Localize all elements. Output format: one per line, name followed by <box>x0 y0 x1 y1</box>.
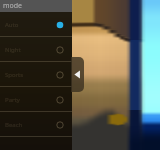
button[interactable]: Close mode drawer <box>71 57 84 92</box>
button[interactable]: Beach <box>0 112 72 137</box>
button[interactable]: Auto <box>0 12 72 37</box>
staticText: Party <box>5 96 56 104</box>
button[interactable]: Night <box>0 37 72 62</box>
staticText: Auto <box>5 21 56 29</box>
button[interactable]: mode <box>0 0 72 12</box>
staticText: Night <box>5 46 56 54</box>
staticText: Beach <box>5 121 56 129</box>
button[interactable]: Sports <box>0 62 72 87</box>
staticText: Sports <box>5 71 56 79</box>
button[interactable]: Party <box>0 87 72 112</box>
staticText: mode <box>3 1 23 11</box>
